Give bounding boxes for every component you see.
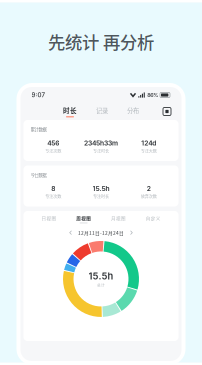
staticText: 456 bbox=[47, 139, 59, 147]
button[interactable]: 分布 bbox=[127, 106, 139, 117]
staticText: 专注天数 bbox=[141, 148, 157, 154]
button[interactable]: 月视图 bbox=[101, 215, 136, 223]
button[interactable]: 自定义 bbox=[136, 215, 171, 223]
staticText: 累计数据 bbox=[30, 126, 46, 132]
staticText: 今日数据 bbox=[30, 171, 46, 178]
staticText: 9:07 bbox=[31, 91, 45, 99]
button[interactable]: Next period bbox=[128, 228, 135, 237]
staticText: 记录 bbox=[96, 106, 108, 115]
staticText: 15.5h bbox=[88, 270, 113, 282]
staticText: 时长 bbox=[63, 106, 77, 115]
staticText: 12月11日-12月24日 bbox=[78, 229, 124, 236]
staticText: 专注次数 bbox=[45, 148, 61, 154]
staticText: 2345h33m bbox=[84, 139, 118, 147]
staticText: 分布 bbox=[127, 106, 139, 115]
button[interactable]: 记录 bbox=[96, 106, 108, 117]
staticText: 8 bbox=[51, 184, 55, 192]
button[interactable]: Previous period bbox=[67, 228, 74, 237]
staticText: 先统计 再分析 bbox=[48, 29, 154, 54]
staticText: 月视图 bbox=[111, 215, 126, 222]
staticText: 自定义 bbox=[146, 215, 161, 222]
staticText: 86% bbox=[147, 92, 158, 98]
button[interactable]: 时长 bbox=[63, 106, 77, 117]
staticText: 放弃次数 bbox=[141, 193, 157, 199]
staticText: 专注次数 bbox=[45, 193, 61, 199]
staticText: 日视图 bbox=[41, 215, 56, 222]
button[interactable]: Calendar bbox=[159, 104, 174, 119]
staticText: 总计 bbox=[97, 282, 105, 288]
staticText: 专注时长 bbox=[93, 148, 109, 154]
staticText: 124d bbox=[141, 139, 156, 147]
staticText: 15.5h bbox=[92, 184, 109, 192]
button[interactable]: 日视图 bbox=[31, 215, 66, 223]
staticText: 2 bbox=[147, 184, 151, 192]
button[interactable]: 周视图 bbox=[66, 215, 101, 223]
staticText: 周视图 bbox=[76, 215, 91, 222]
staticText: 专注时长 bbox=[93, 193, 109, 199]
